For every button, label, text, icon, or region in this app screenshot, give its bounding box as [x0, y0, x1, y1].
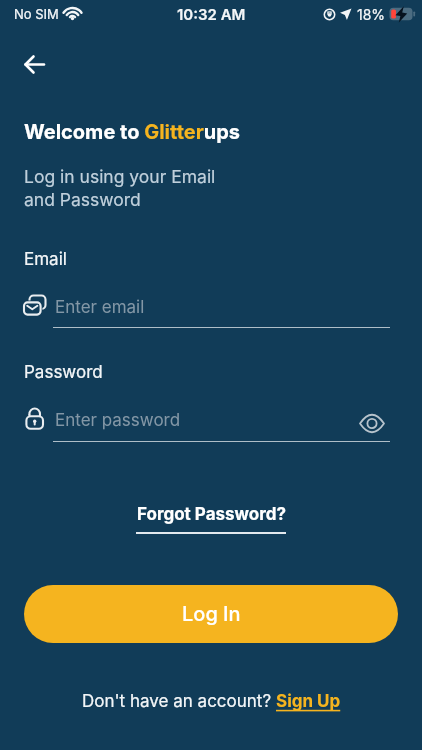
- button[interactable]: [13, 51, 55, 77]
- button[interactable]: Forgot Password?: [131, 500, 291, 540]
- staticText: 10:32 AM: [177, 5, 246, 23]
- staticText: 18%: [357, 6, 386, 23]
- staticText: Forgot Password?: [137, 504, 286, 525]
- button[interactable]: Enter password: [20, 403, 400, 443]
- button[interactable]: Enter email: [20, 290, 400, 330]
- button[interactable]: Log In: [24, 585, 398, 643]
- staticText: Sign Up: [276, 691, 341, 712]
- staticText: Log In: [182, 602, 241, 626]
- staticText: Enter email: [55, 297, 145, 318]
- staticText: Email: [24, 249, 67, 270]
- button[interactable]: Don't have an account?: [82, 688, 341, 714]
- button[interactable]: [350, 403, 394, 443]
- staticText: Don't have an account?: [82, 691, 276, 712]
- staticText: Password: [24, 362, 103, 383]
- staticText: No SIM: [14, 6, 59, 22]
- staticText: Log in using your Email and Password: [24, 166, 216, 211]
- staticText: Welcome to Glitterups: [24, 120, 241, 144]
- staticText: Enter password: [55, 410, 181, 431]
